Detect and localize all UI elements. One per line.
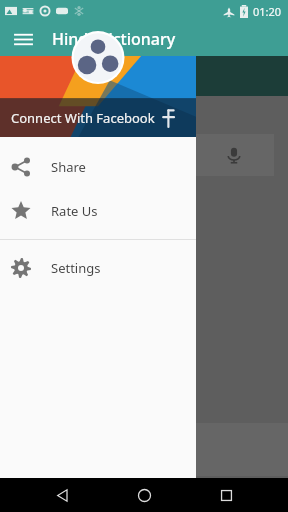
button[interactable]: Voice search	[16, 134, 274, 176]
button[interactable]: Recents	[206, 478, 246, 512]
button[interactable]: Back	[42, 478, 82, 512]
button[interactable]: Connect With Facebook	[0, 99, 196, 137]
button[interactable]: Share	[0, 145, 196, 189]
button[interactable]: Voice search	[222, 143, 246, 167]
staticText: CHAT ROOM	[107, 69, 181, 84]
staticText: Rate Us	[51, 202, 98, 220]
button[interactable]: CHAT ROOM	[107, 56, 181, 96]
staticText: Settings	[51, 259, 101, 277]
button[interactable]: Settings	[0, 246, 196, 290]
staticText: Connect With Facebook	[11, 109, 156, 127]
button[interactable]	[8, 423, 288, 476]
button[interactable]: Home	[124, 478, 164, 512]
button[interactable]: Rate Us	[0, 189, 196, 233]
staticText: 01:20	[253, 4, 282, 19]
button[interactable]: Open navigation drawer	[8, 24, 38, 54]
staticText: Share	[51, 158, 86, 176]
staticText: Hindi Dictionary	[52, 28, 176, 50]
